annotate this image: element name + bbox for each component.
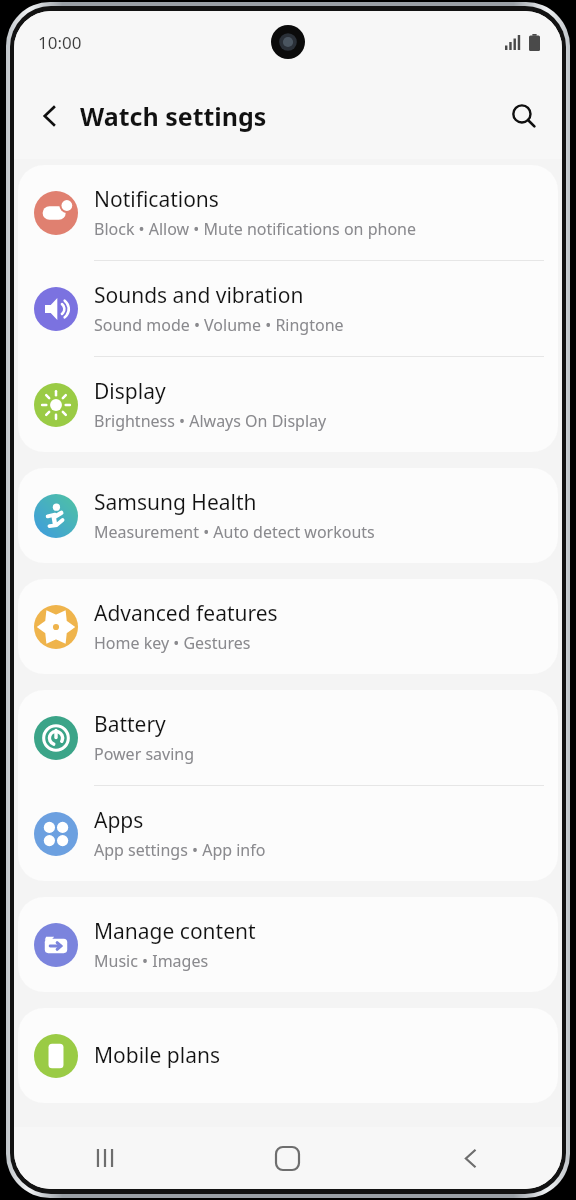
button[interactable]: Manage content — [18, 897, 558, 992]
staticText: Sounds and vibration — [94, 281, 304, 310]
button[interactable]: Notifications — [18, 165, 558, 260]
staticText: Sound mode • Volume • Ringtone — [94, 314, 344, 336]
staticText: Battery — [94, 710, 166, 739]
button[interactable]: Advanced features — [18, 579, 558, 674]
staticText: Display — [94, 377, 166, 406]
button[interactable]: Apps — [18, 786, 558, 881]
button[interactable]: Battery — [18, 690, 558, 785]
button[interactable]: Home — [196, 1127, 379, 1189]
button[interactable]: Samsung Health — [18, 468, 558, 563]
staticText: Measurement • Auto detect workouts — [94, 521, 375, 543]
staticText: Brightness • Always On Display — [94, 410, 327, 432]
staticText: Apps — [94, 806, 144, 835]
button[interactable]: Mobile plans — [18, 1008, 558, 1103]
button[interactable]: Sounds and vibration — [18, 261, 558, 356]
staticText: Samsung Health — [94, 488, 257, 517]
staticText: Block • Allow • Mute notifications on ph… — [94, 218, 416, 240]
staticText: Notifications — [94, 185, 219, 214]
button[interactable]: Back — [24, 90, 76, 142]
staticText: Manage content — [94, 917, 256, 946]
staticText: Advanced features — [94, 599, 278, 628]
button[interactable]: Recents — [14, 1127, 196, 1189]
button[interactable]: Display — [18, 357, 558, 452]
button[interactable]: Back — [379, 1127, 562, 1189]
staticText: App settings • App info — [94, 839, 266, 861]
button[interactable]: Search — [498, 90, 550, 142]
staticText: Power saving — [94, 743, 195, 765]
staticText: Mobile plans — [94, 1041, 220, 1070]
staticText: Watch settings — [80, 99, 267, 133]
staticText: Music • Images — [94, 950, 209, 972]
staticText: Home key • Gestures — [94, 632, 251, 654]
staticText: 10:00 — [38, 31, 82, 54]
